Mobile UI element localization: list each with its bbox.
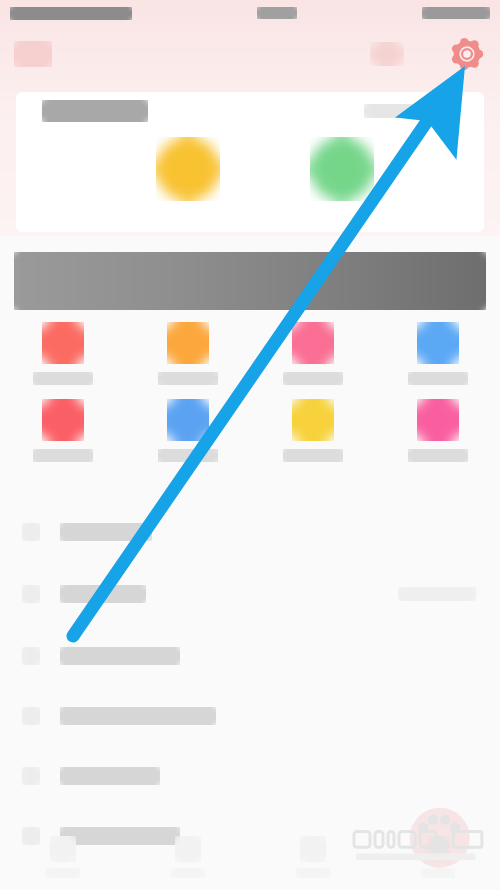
button[interactable] [156, 137, 220, 201]
button[interactable] [0, 630, 500, 682]
button[interactable] [0, 810, 500, 862]
button[interactable] [125, 322, 250, 385]
button[interactable] [250, 399, 375, 462]
button[interactable]: Settings [450, 37, 484, 71]
button[interactable] [375, 399, 500, 462]
button[interactable] [0, 506, 500, 558]
button[interactable]: Tab 2 [125, 824, 250, 890]
button[interactable]: Tab 3 [250, 824, 375, 890]
button[interactable]: Tab 4 [375, 824, 500, 890]
button[interactable] [0, 399, 125, 462]
button[interactable] [16, 92, 484, 232]
button[interactable] [250, 322, 375, 385]
button[interactable] [0, 322, 125, 385]
button[interactable] [370, 42, 404, 66]
button[interactable] [14, 252, 486, 310]
button[interactable] [375, 322, 500, 385]
button[interactable] [0, 750, 500, 802]
button[interactable] [125, 399, 250, 462]
button[interactable] [0, 690, 500, 742]
button[interactable]: Tab 1 [0, 824, 125, 890]
button[interactable] [310, 137, 374, 201]
button[interactable] [0, 568, 500, 620]
